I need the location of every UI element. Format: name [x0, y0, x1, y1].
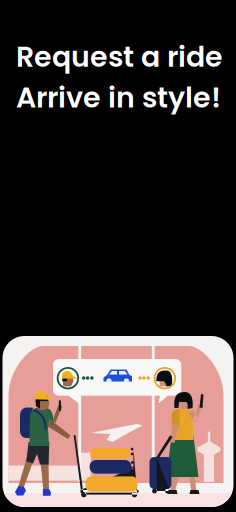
staticText: Request a ride	[16, 37, 223, 77]
staticText: Arrive in style!	[16, 78, 221, 118]
